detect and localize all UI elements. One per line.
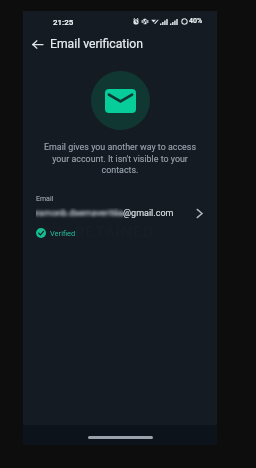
staticText: Email verification	[50, 37, 143, 51]
button[interactable]: Email	[23, 195, 217, 238]
staticText: Email	[36, 195, 54, 203]
staticText: ramonb.dsemaveritiia	[36, 208, 123, 219]
staticText: @gmail.com	[123, 208, 174, 219]
button[interactable]: Back	[27, 34, 47, 54]
staticText: 40%	[189, 17, 203, 25]
staticText: Verified	[50, 229, 76, 238]
staticText: Email gives you another way to access yo…	[43, 142, 197, 175]
staticText: 21:25	[53, 18, 74, 27]
